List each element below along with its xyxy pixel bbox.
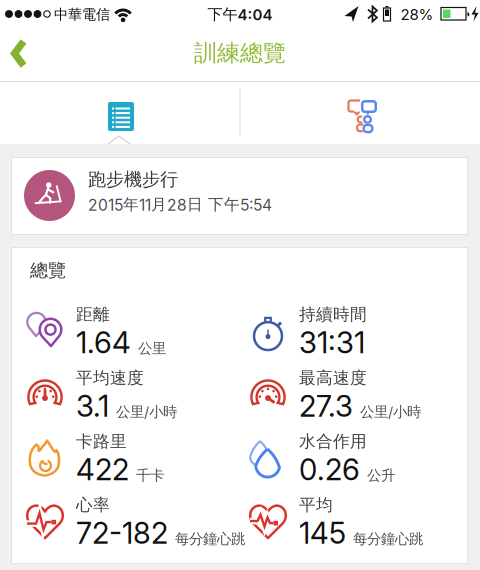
staticText: 72-182 [76, 515, 168, 551]
staticText: 心率 [76, 494, 110, 515]
staticText: 422 [76, 452, 129, 487]
staticText: 145 [299, 515, 346, 551]
staticText: 水合作用 [299, 431, 367, 452]
staticText: 下午4:04 [207, 5, 272, 24]
staticText: 訓練總覽 [194, 38, 286, 68]
staticText: 中華電信 [54, 6, 110, 23]
staticText: 平均速度 [76, 367, 144, 388]
staticText: 2015年11月28日 下午5:54 [88, 195, 272, 214]
staticText: 跑步機步行 [88, 168, 178, 191]
button[interactable]: Overview tab [0, 82, 239, 144]
staticText: 公升 [367, 466, 395, 484]
staticText: 千卡 [136, 466, 164, 484]
staticText: 3.1 [76, 388, 109, 424]
staticText: 每分鐘心跳 [175, 530, 245, 548]
staticText: 公里/小時 [360, 403, 421, 421]
button[interactable]: Back [0, 28, 44, 78]
staticText: 每分鐘心跳 [353, 530, 423, 548]
staticText: 1.64 [76, 325, 131, 360]
staticText: 27.3 [299, 388, 353, 424]
staticText: 卡路里 [76, 431, 127, 452]
staticText: 31:31 [299, 325, 365, 360]
button[interactable]: Community tab [241, 82, 480, 144]
staticText: 距離 [76, 304, 110, 325]
staticText: 28% [400, 5, 433, 24]
staticText: 持續時間 [299, 304, 367, 325]
staticText: 公里/小時 [116, 403, 177, 421]
staticText: 0.26 [299, 452, 360, 487]
staticText: 最高速度 [299, 367, 367, 388]
staticText: 總覽 [30, 259, 66, 282]
staticText: 公里 [138, 339, 166, 357]
staticText: 平均 [299, 494, 333, 515]
